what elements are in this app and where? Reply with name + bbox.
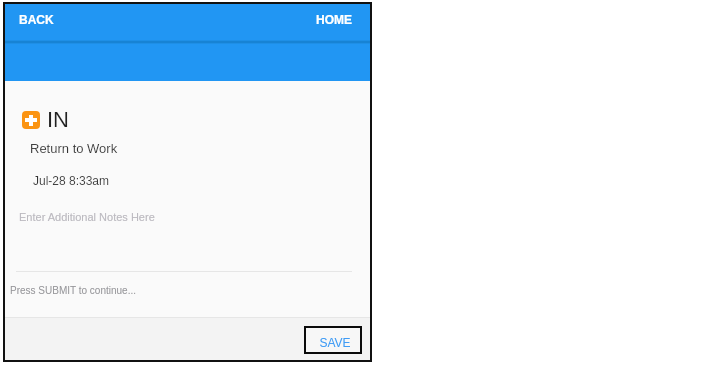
button[interactable]: Enter Additional Notes Here — [16, 206, 352, 272]
staticText: IN — [47, 107, 69, 132]
staticText: BACK — [19, 13, 54, 26]
staticText: SAVE — [319, 336, 351, 349]
button[interactable]: SAVE — [306, 328, 360, 352]
button[interactable]: Punch type: IN — [19, 106, 83, 134]
staticText: Press SUBMIT to continue... — [10, 285, 136, 296]
button[interactable]: BACK — [15, 9, 58, 30]
button[interactable]: HOME — [312, 9, 356, 30]
staticText: Jul-28 8:33am — [33, 174, 110, 187]
staticText: HOME — [316, 13, 352, 26]
staticText: Enter Additional Notes Here — [19, 211, 155, 223]
staticText: Return to Work — [30, 141, 118, 156]
